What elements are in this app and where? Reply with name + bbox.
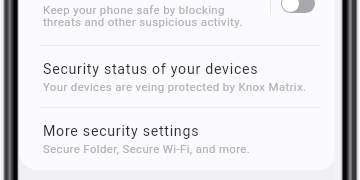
button[interactable]: Auto blocker toggle, off [281, 0, 315, 13]
button[interactable]: More security settings [18, 108, 334, 170]
staticText: Security status of your devices [43, 61, 259, 78]
staticText: Your devices are veing protected by Knox… [43, 80, 307, 93]
button[interactable]: Security status of your devices [18, 46, 334, 107]
button[interactable]: Keep your phone safe by blocking [18, 0, 334, 45]
staticText: More security settings [43, 123, 200, 140]
staticText: Secure Folder, Secure Wi-Fi, and more. [43, 142, 251, 155]
staticText: threats and other suspicious activity. [43, 15, 243, 28]
staticText: Keep your phone safe by blocking [43, 3, 225, 16]
